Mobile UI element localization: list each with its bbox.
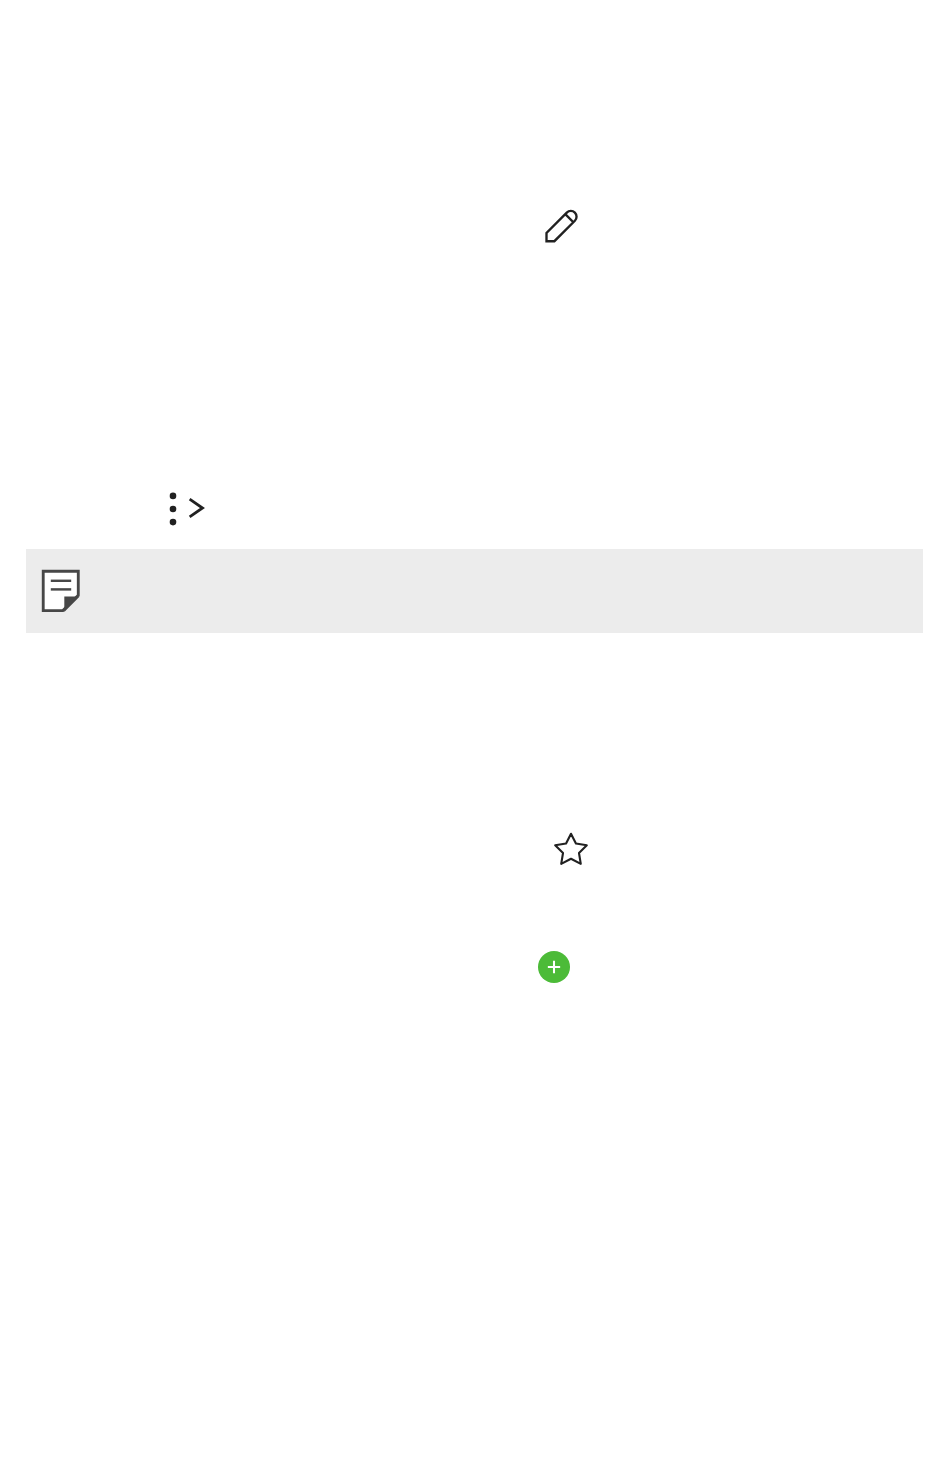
button[interactable]: Edit [534, 198, 590, 254]
button[interactable]: Open [174, 484, 212, 522]
button[interactable]: Favorite [543, 822, 599, 878]
button[interactable]: Add [538, 951, 570, 983]
button[interactable]: Note [26, 549, 923, 633]
button[interactable]: More options [149, 485, 197, 533]
other: Note [31, 557, 87, 613]
